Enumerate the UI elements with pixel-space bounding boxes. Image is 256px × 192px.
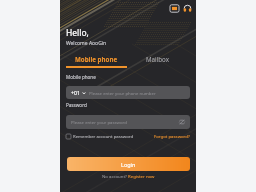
staticText: Mobile phone <box>75 55 118 63</box>
staticText: Mailbox <box>146 55 169 63</box>
button[interactable]: Login <box>67 157 190 171</box>
button[interactable]: Language <box>170 4 179 13</box>
staticText: Mobile phone <box>66 74 96 80</box>
staticText: Hello, <box>66 27 89 39</box>
button[interactable]: Forgot password? <box>154 133 190 139</box>
staticText: Please enter your password <box>71 119 127 125</box>
staticText: +01 <box>71 89 80 96</box>
button[interactable]: Show password <box>179 119 185 125</box>
button[interactable]: Register now <box>127 173 155 179</box>
staticText: Remember account password <box>73 133 134 139</box>
staticText: Welcome AooGin <box>66 40 107 47</box>
button[interactable]: Mailbox <box>127 54 188 64</box>
button[interactable]: Remember account password <box>66 133 134 139</box>
button[interactable]: Please enter your password <box>66 115 190 129</box>
staticText: Login <box>121 161 136 168</box>
staticText: Please enter your phone number <box>89 90 156 96</box>
staticText: No account? <box>102 173 127 179</box>
button[interactable]: Mobile phone <box>66 54 127 64</box>
staticText: Password <box>66 102 87 108</box>
button[interactable]: +01 <box>66 86 190 99</box>
button[interactable]: Customer support <box>183 4 192 13</box>
